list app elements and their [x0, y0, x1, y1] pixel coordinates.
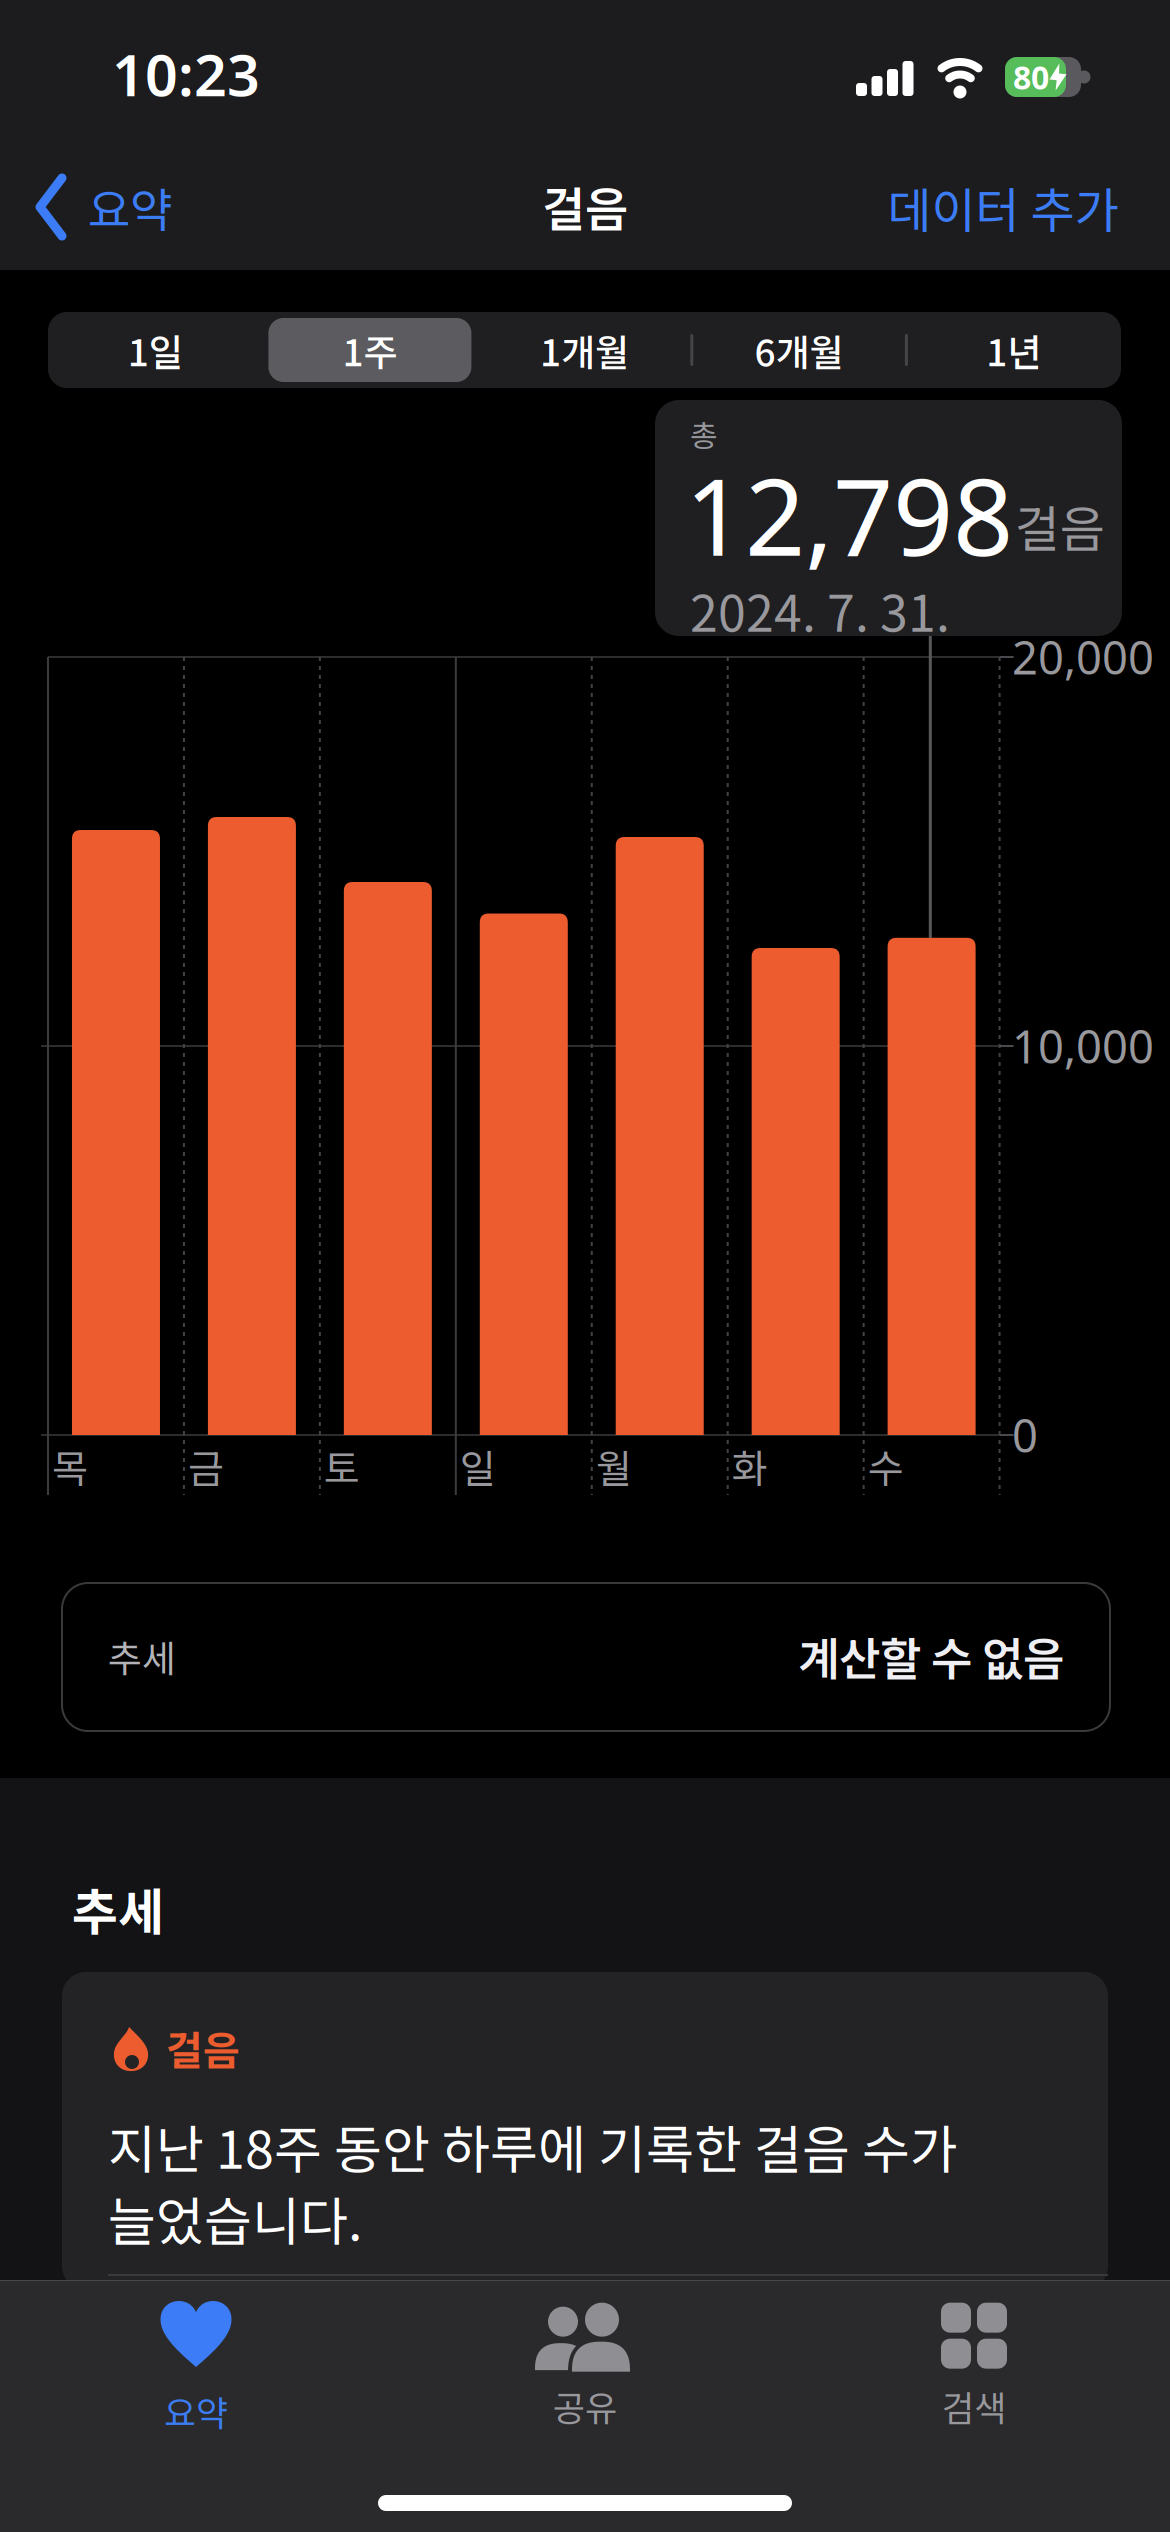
button[interactable]: 공유	[445, 2300, 725, 2436]
staticText: 토	[324, 1438, 360, 1494]
button[interactable]: 걸음	[62, 1972, 1108, 2290]
staticText: 수	[868, 1438, 904, 1494]
button[interactable]: 요약	[56, 2300, 336, 2436]
staticText: 요약	[164, 2386, 228, 2436]
staticText: 요약	[88, 174, 172, 240]
staticText: 일	[460, 1438, 496, 1494]
button[interactable]: 추세	[62, 1583, 1110, 1731]
staticText: 6개월	[755, 323, 844, 377]
staticText: 추세	[72, 1873, 164, 1945]
staticText: 총	[690, 412, 718, 456]
button[interactable]: 1일	[50, 312, 260, 388]
staticText: 검색	[942, 2381, 1006, 2431]
staticText: 늘었습니다.	[108, 2180, 362, 2256]
staticText: 20,000	[1012, 627, 1154, 687]
staticText: 계산할 수 없음	[798, 1623, 1064, 1689]
button[interactable]: 요약	[36, 174, 172, 240]
button[interactable]: 검색	[834, 2300, 1114, 2436]
staticText: 0	[1012, 1405, 1038, 1465]
staticText: 데이터 추가	[887, 172, 1118, 242]
button[interactable]: 6개월	[694, 312, 904, 388]
staticText: 걸음	[166, 2019, 240, 2077]
staticText: 1년	[986, 323, 1041, 377]
staticText: 월	[596, 1438, 632, 1494]
button[interactable]: 1개월	[479, 312, 689, 388]
staticText: 80	[1013, 56, 1049, 98]
staticText: 10:23	[112, 36, 260, 112]
staticText: 1주	[342, 323, 397, 377]
staticText: 걸음	[542, 172, 628, 240]
staticText: 10,000	[1012, 1016, 1154, 1076]
staticText: 12,798	[685, 445, 1013, 585]
staticText: 걸음	[1015, 490, 1105, 561]
staticText: 추세	[108, 1629, 176, 1683]
button[interactable]: 1년	[909, 312, 1119, 388]
staticText: 화	[732, 1438, 768, 1494]
staticText: 공유	[553, 2381, 617, 2431]
staticText: 지난 18주 동안 하루에 기록한 걸음 수가	[108, 2108, 958, 2184]
staticText: 금	[188, 1438, 224, 1494]
button[interactable]: 1주	[265, 312, 475, 388]
staticText: 1개월	[540, 323, 629, 377]
staticText: 1일	[128, 323, 183, 377]
staticText: 2024. 7. 31.	[690, 574, 950, 646]
button[interactable]: 데이터 추가	[887, 172, 1118, 242]
staticText: 목	[52, 1438, 88, 1494]
